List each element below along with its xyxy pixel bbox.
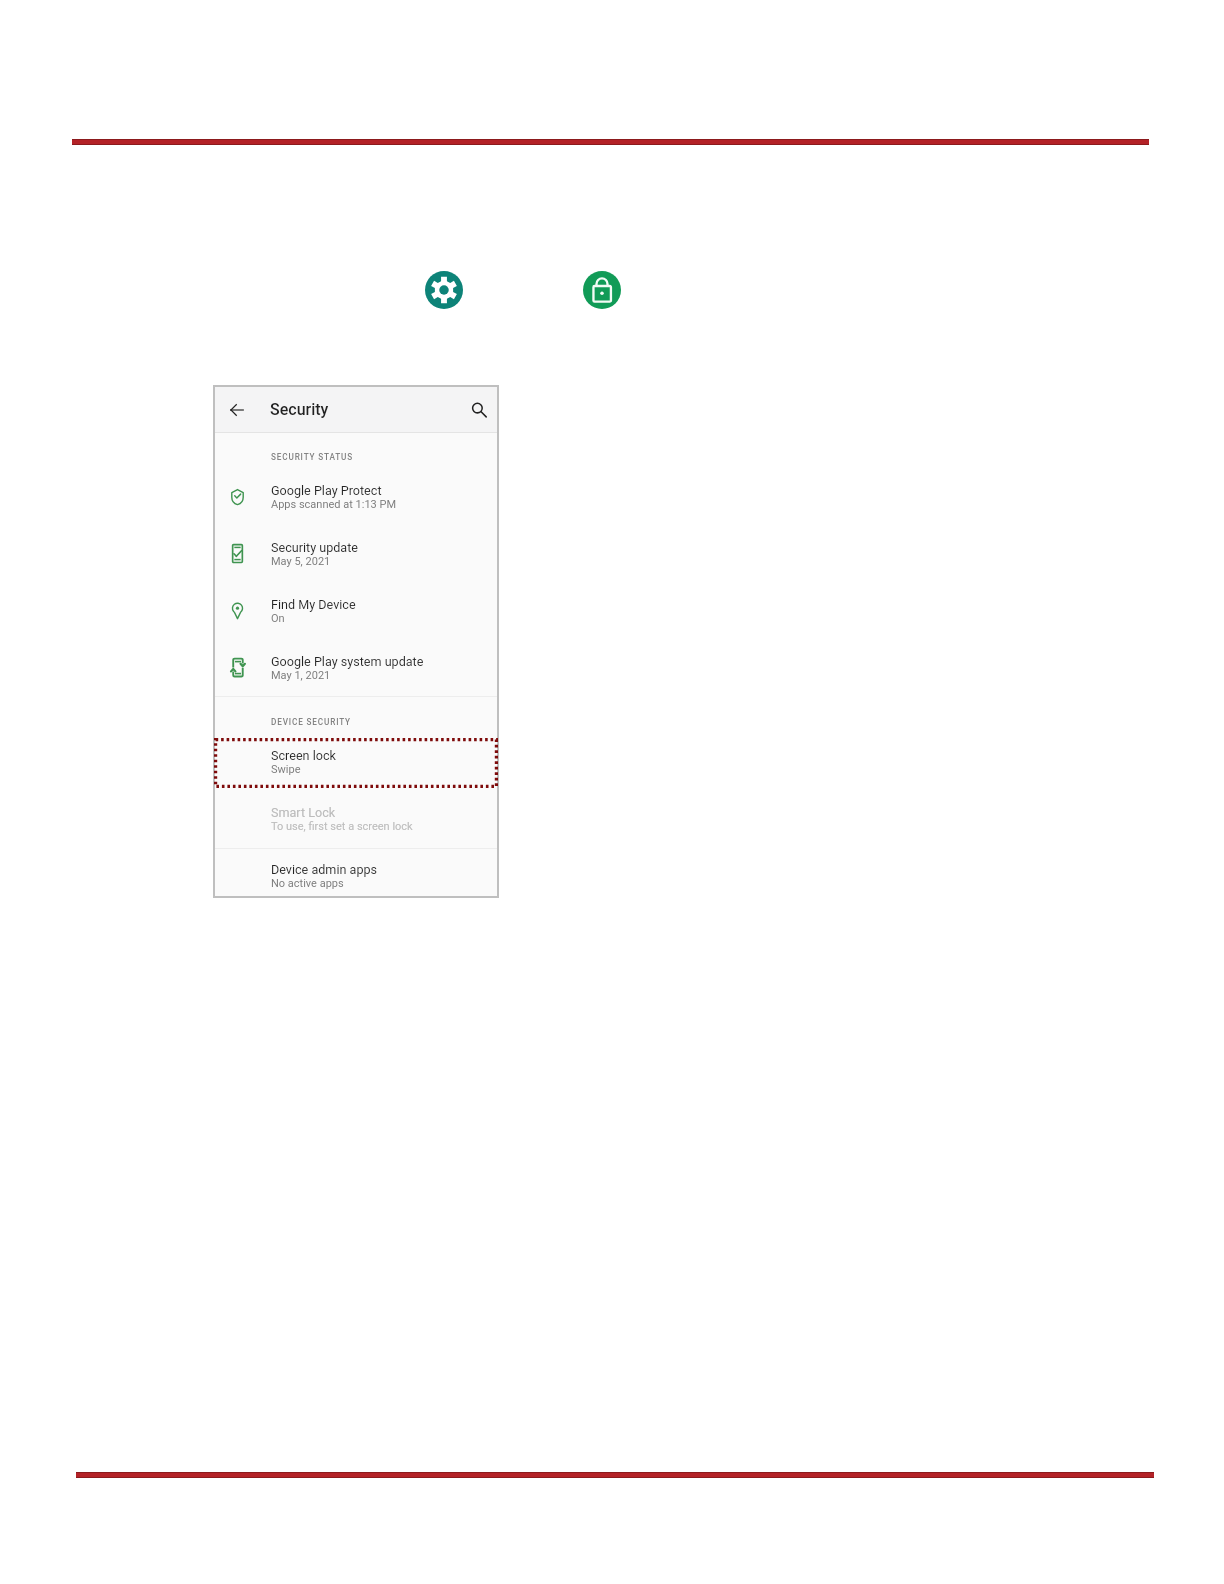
- staticText: DEVICE SECURITY: [271, 717, 351, 727]
- staticText: Google Play system update: [271, 654, 424, 669]
- staticText: Device admin apps: [271, 862, 378, 877]
- button[interactable]: Google Play system update: [213, 650, 499, 696]
- button[interactable]: Device admin apps: [213, 858, 499, 904]
- staticText: Smart Lock: [271, 805, 336, 820]
- staticText: Google Play Protect: [271, 483, 382, 498]
- staticText: Swipe: [271, 763, 301, 776]
- button[interactable]: Lock: [583, 271, 621, 309]
- button[interactable]: Security update: [213, 536, 499, 582]
- staticText: May 1, 2021: [271, 669, 331, 682]
- staticText: Security: [270, 400, 329, 419]
- staticText: SECURITY STATUS: [271, 452, 354, 462]
- staticText: Security update: [271, 540, 358, 555]
- staticText: To use, first set a screen lock: [271, 820, 413, 833]
- button[interactable]: Screen lock: [213, 744, 499, 790]
- button[interactable]: Google Play Protect: [213, 479, 499, 525]
- button[interactable]: Search: [467, 398, 491, 422]
- staticText: On: [271, 612, 285, 625]
- staticText: May 5, 2021: [271, 555, 331, 568]
- staticText: No active apps: [271, 877, 344, 890]
- button[interactable]: Smart Lock: [213, 801, 499, 847]
- staticText: Apps scanned at 1:13 PM: [271, 498, 397, 511]
- button[interactable]: Navigate back: [225, 398, 249, 422]
- button[interactable]: Settings: [425, 271, 463, 309]
- staticText: Find My Device: [271, 597, 356, 612]
- button[interactable]: Find My Device: [213, 593, 499, 639]
- staticText: Screen lock: [271, 748, 336, 763]
